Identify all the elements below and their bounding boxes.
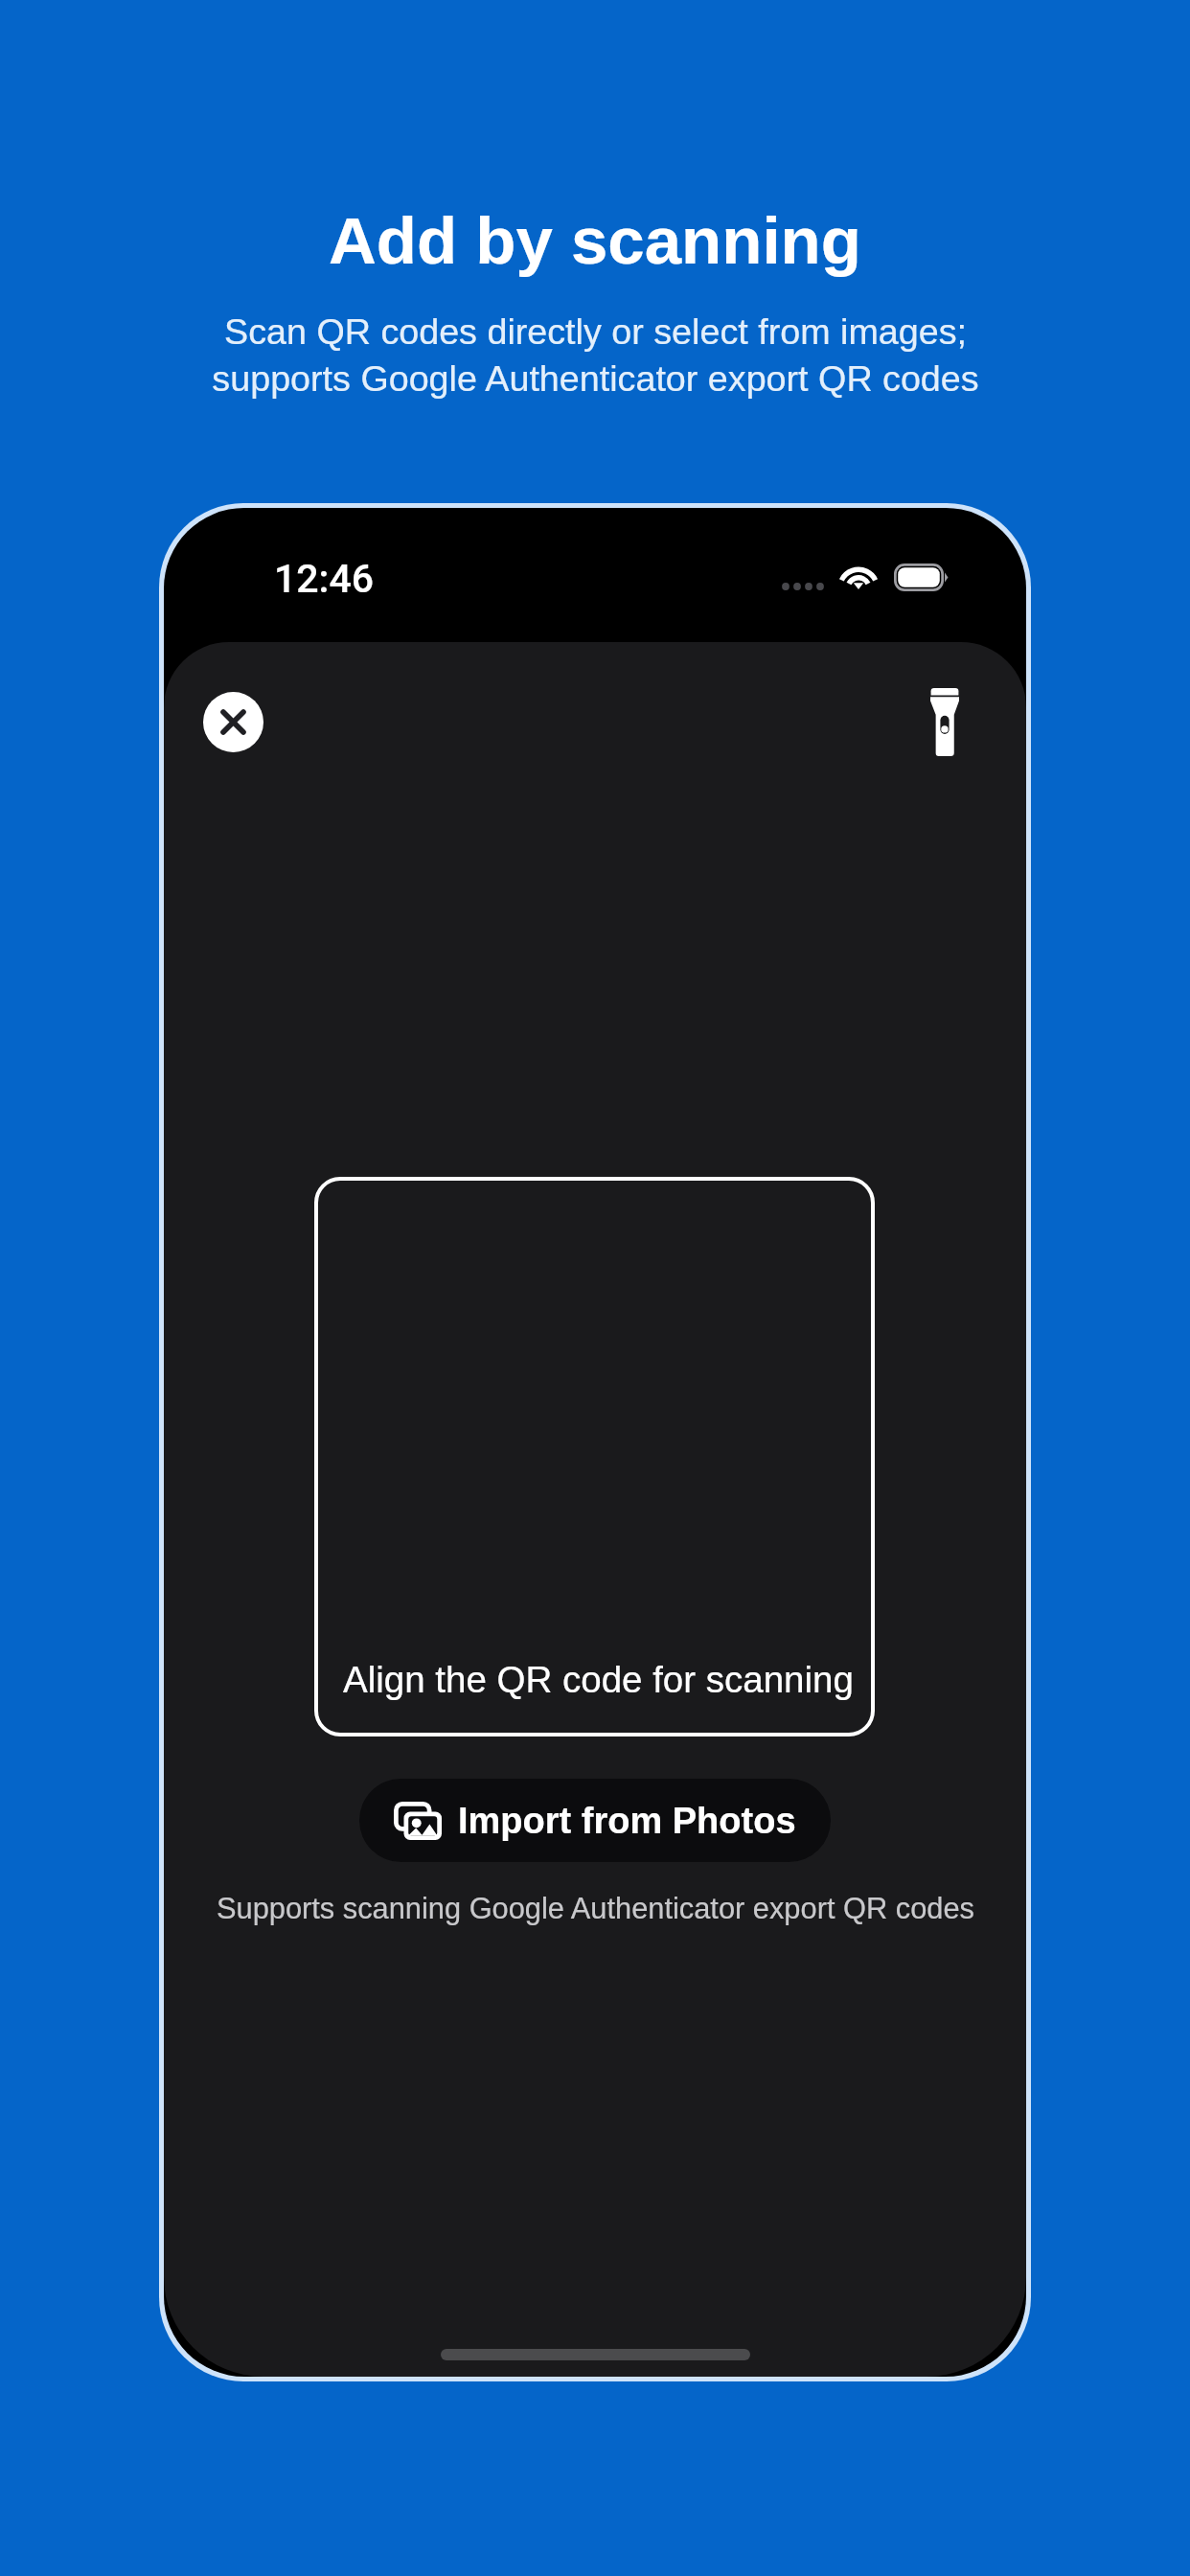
button[interactable]: Flashlight [900, 668, 990, 775]
staticText: Import from Photos [458, 1801, 796, 1841]
button[interactable]: Close [203, 692, 263, 752]
staticText: Supports scanning Google Authenticator e… [217, 1892, 974, 1924]
staticText: Scan QR codes directly or select from im… [212, 311, 979, 399]
staticText: Add by scanning [329, 204, 861, 278]
button[interactable]: Import from Photos [359, 1779, 831, 1862]
staticText: 12:46 [274, 556, 375, 602]
staticText: Align the QR code for scanning [343, 1659, 854, 1700]
